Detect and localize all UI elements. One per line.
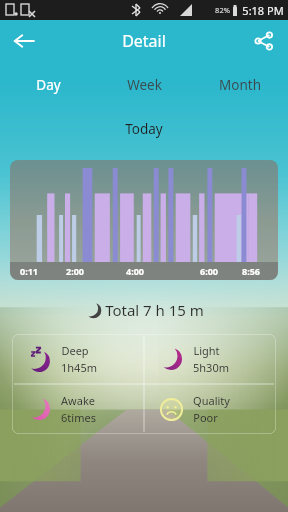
staticText: Quality (193, 393, 230, 408)
button[interactable]: Deep (24, 334, 144, 384)
staticText: 1h45m (61, 360, 97, 375)
staticText: Detail (122, 30, 166, 52)
staticText: Deep (61, 343, 89, 358)
button[interactable]: Quality (156, 384, 276, 434)
button[interactable]: Back (6, 23, 42, 59)
staticText: Total 7 h 15 m (105, 300, 204, 320)
staticText: 6:00 (200, 265, 218, 277)
staticText: 6times (61, 410, 96, 425)
staticText: Today (125, 120, 163, 138)
staticText: Light (193, 343, 220, 358)
staticText: 5:18 PM (242, 3, 284, 18)
button[interactable]: Light (156, 334, 276, 384)
button[interactable]: Awake (24, 384, 144, 434)
staticText: Month (219, 76, 261, 94)
staticText: 4:00 (126, 265, 144, 277)
staticText: 5h30m (193, 360, 229, 375)
button[interactable]: Month (192, 72, 288, 98)
button[interactable]: Share (246, 23, 282, 59)
button[interactable]: Day (0, 72, 96, 98)
staticText: Poor (193, 410, 218, 425)
staticText: Day (36, 76, 61, 94)
staticText: 2:00 (66, 265, 84, 277)
staticText: Awake (61, 393, 95, 408)
staticText: 0:11 (20, 265, 38, 277)
staticText: 8:56 (242, 265, 260, 277)
staticText: 82% (215, 5, 230, 15)
button[interactable]: Total 7 h 15 m (0, 300, 288, 320)
button[interactable]: Week (96, 72, 192, 98)
staticText: Week (127, 76, 162, 94)
button[interactable]: 0:11 (10, 160, 278, 280)
